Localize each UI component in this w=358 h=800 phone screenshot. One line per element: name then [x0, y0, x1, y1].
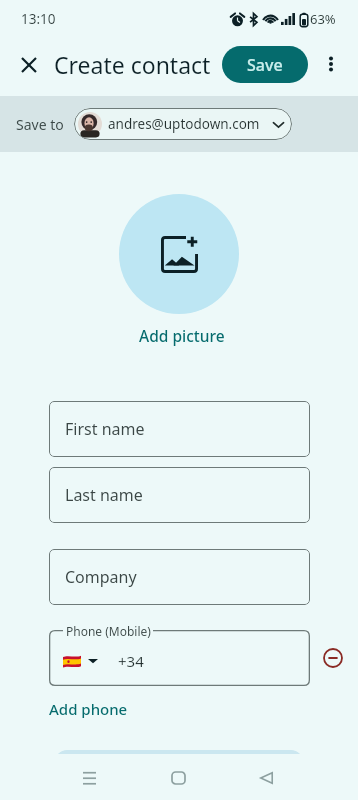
- button[interactable]: Close: [10, 46, 47, 83]
- button[interactable]: Home: [158, 758, 198, 798]
- button[interactable]: Save: [222, 46, 308, 83]
- button[interactable]: Back: [246, 758, 286, 798]
- staticText: Add phone: [49, 699, 128, 719]
- staticText: +34: [118, 651, 144, 671]
- staticText: Save: [247, 54, 283, 76]
- button[interactable]: First name: [49, 401, 310, 457]
- staticText: Company: [65, 566, 137, 588]
- button[interactable]: Add picture: [135, 321, 229, 350]
- staticText: Phone (Mobile): [66, 623, 151, 639]
- staticText: andres@uptodown.com: [108, 115, 260, 133]
- button[interactable]: andres@uptodown.com: [74, 108, 292, 140]
- staticText: Save to: [16, 115, 64, 134]
- staticText: Create contact: [54, 49, 211, 80]
- button[interactable]: Phone (Mobile): [49, 630, 310, 686]
- staticText: First name: [65, 418, 145, 440]
- button[interactable]: Add picture: [119, 194, 239, 314]
- button[interactable]: Recent apps: [69, 758, 109, 798]
- staticText: 13:10: [21, 10, 56, 28]
- staticText: Add picture: [139, 325, 225, 346]
- button[interactable]: Last name: [49, 467, 310, 523]
- staticText: 63%: [310, 10, 336, 28]
- button[interactable]: Remove phone: [322, 647, 344, 669]
- staticText: Last name: [65, 484, 143, 506]
- button[interactable]: Company: [49, 549, 310, 605]
- button[interactable]: Add phone: [45, 695, 132, 723]
- button[interactable]: More options: [313, 46, 349, 82]
